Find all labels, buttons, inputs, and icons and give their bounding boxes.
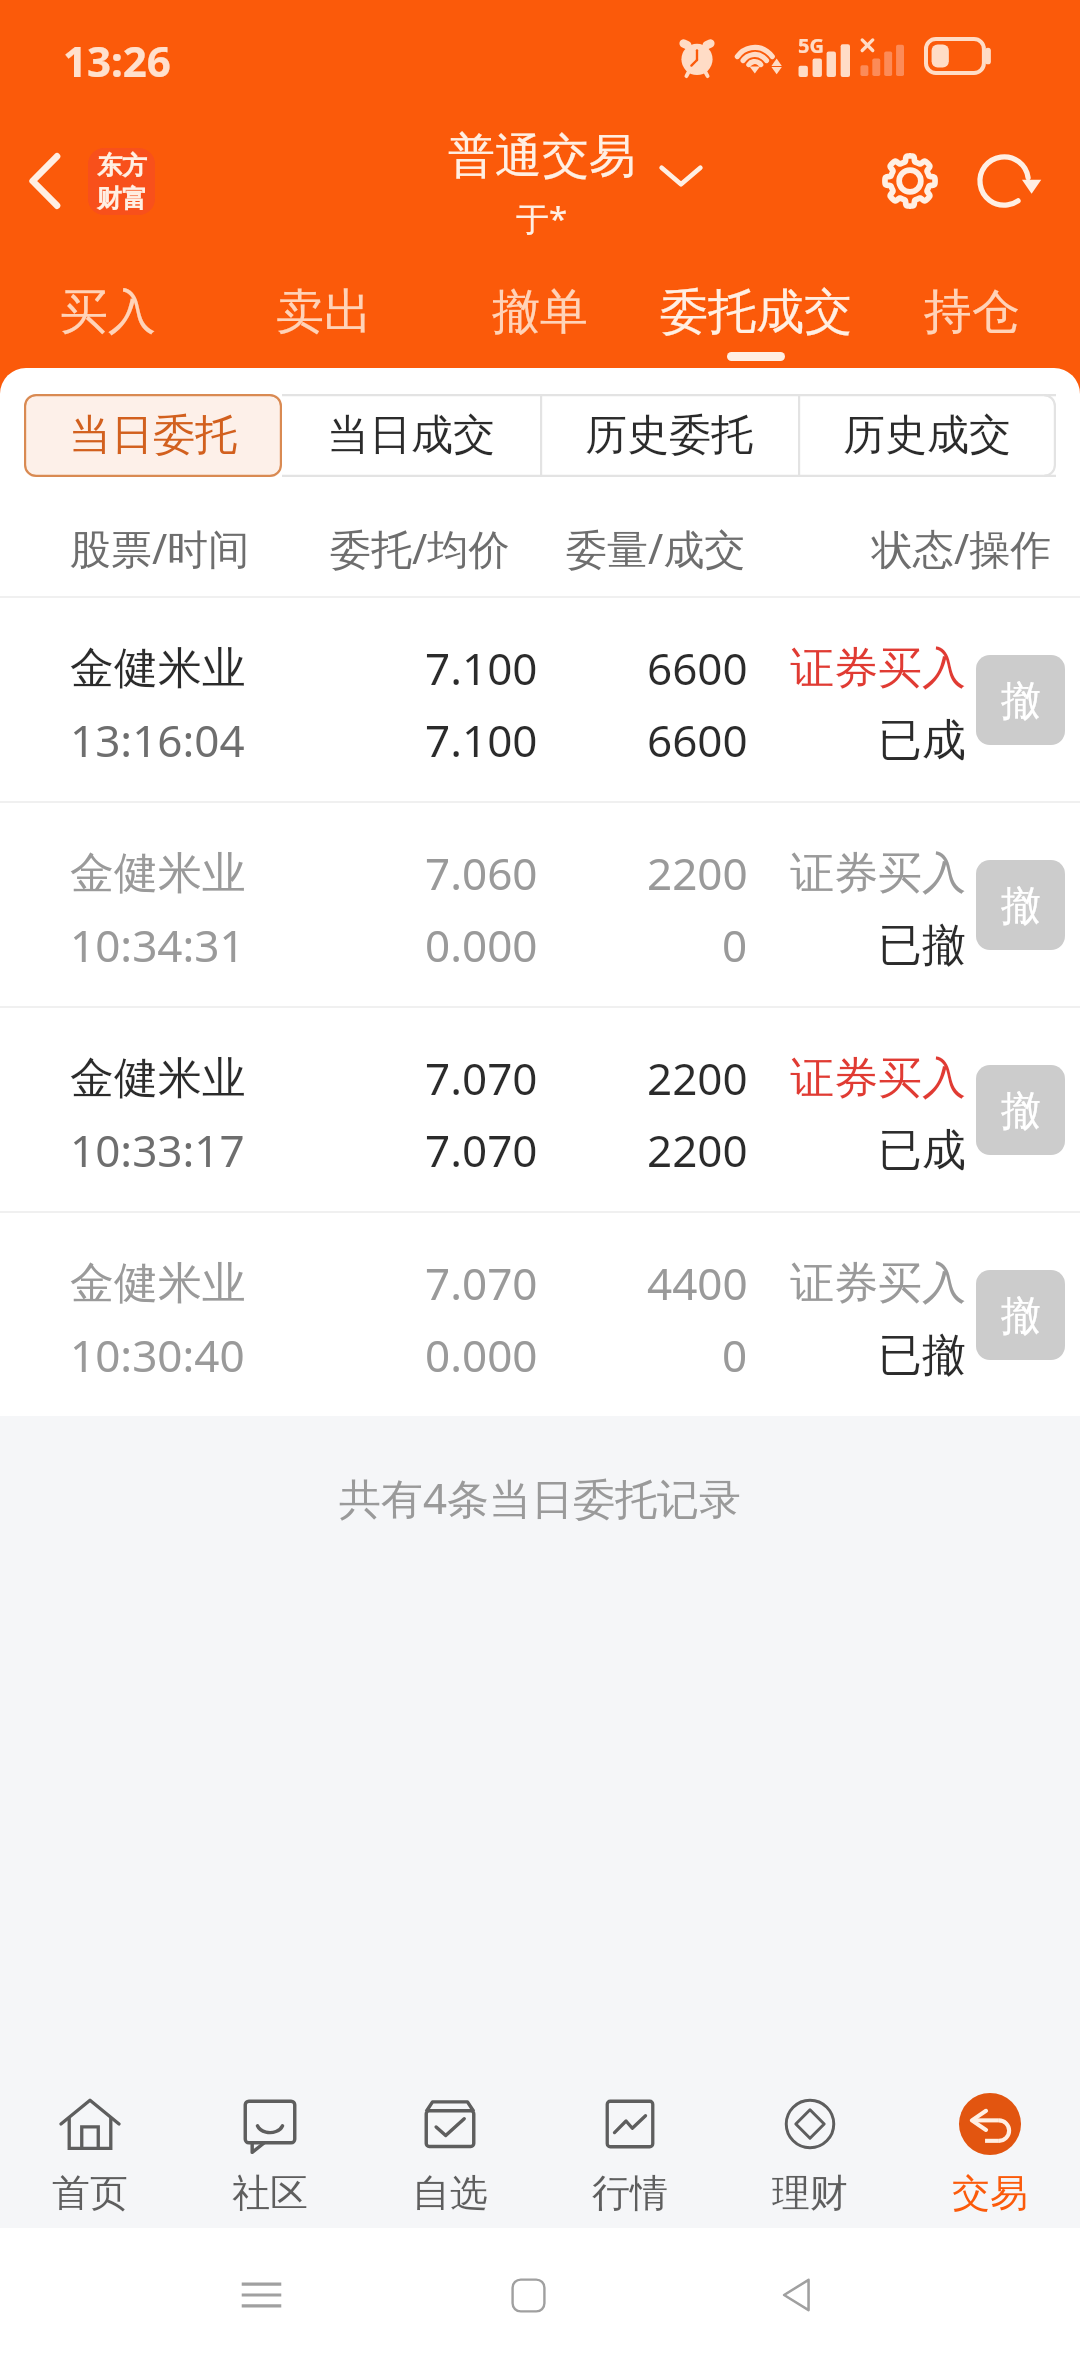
staticText: 5G — [798, 32, 824, 59]
staticText: 7.100 — [425, 638, 538, 698]
button[interactable]: 首页 — [0, 2072, 180, 2228]
button[interactable]: Refresh — [958, 133, 1054, 229]
staticText: 证券买入 — [790, 641, 966, 696]
staticText: 已撤 — [878, 918, 966, 973]
staticText: 已成 — [878, 1123, 966, 1178]
button[interactable]: 东方 — [88, 148, 155, 215]
staticText: 股票/时间 — [70, 520, 250, 576]
staticText: 10:34:31 — [70, 915, 245, 975]
button[interactable]: 撤 — [976, 1270, 1065, 1360]
staticText: 0 — [722, 915, 748, 975]
staticText: 撤单 — [492, 282, 588, 342]
staticText: 2200 — [647, 1120, 748, 1180]
button[interactable]: 当日成交 — [282, 394, 540, 477]
button[interactable]: Back — [0, 131, 88, 231]
staticText: 已撤 — [878, 1328, 966, 1383]
staticText: 金健米业 — [70, 846, 246, 901]
button[interactable]: 金健米业 — [0, 803, 1080, 1006]
staticText: 委托/均价 — [330, 520, 510, 576]
staticText: 自选 — [412, 2169, 488, 2217]
button[interactable]: 社区 — [180, 2072, 360, 2228]
button[interactable]: Recent apps — [216, 2250, 306, 2340]
staticText: 撤 — [1001, 1085, 1041, 1135]
staticText: 0 — [722, 1325, 748, 1385]
staticText: 7.070 — [425, 1253, 538, 1313]
staticText: 13:26 — [63, 32, 171, 89]
staticText: 当日委托 — [69, 409, 237, 462]
staticText: 持仓 — [924, 282, 1020, 342]
staticText: 证券买入 — [790, 1051, 966, 1106]
staticText: 7.100 — [425, 710, 538, 770]
staticText: 7.070 — [425, 1048, 538, 1108]
button[interactable]: 金健米业 — [0, 1213, 1080, 1416]
button[interactable]: 委托成交 — [648, 250, 864, 368]
staticText: 历史成交 — [843, 409, 1011, 462]
button[interactable]: 买入 — [0, 250, 216, 368]
staticText: 历史委托 — [585, 409, 753, 462]
staticText: 委托成交 — [660, 282, 852, 342]
staticText: 撤 — [1001, 880, 1041, 930]
staticText: 6600 — [647, 710, 748, 770]
staticText: 交易 — [952, 2169, 1028, 2217]
staticText: 理财 — [772, 2169, 848, 2217]
button[interactable]: 历史委托 — [540, 394, 798, 477]
button[interactable]: 持仓 — [864, 250, 1080, 368]
staticText: 10:33:17 — [70, 1120, 245, 1180]
staticText: 13:16:04 — [70, 710, 245, 770]
button[interactable]: Home — [483, 2250, 573, 2340]
staticText: 10:30:40 — [70, 1325, 245, 1385]
button[interactable]: 撤 — [976, 1065, 1065, 1155]
button[interactable]: 当日委托 — [24, 394, 282, 477]
button[interactable]: 行情 — [540, 2072, 720, 2228]
staticText: 4400 — [647, 1253, 748, 1313]
staticText: 卖出 — [276, 282, 372, 342]
staticText: 买入 — [60, 282, 156, 342]
button[interactable]: Back — [752, 2250, 842, 2340]
staticText: 金健米业 — [70, 1051, 246, 1106]
staticText: 6600 — [647, 638, 748, 698]
staticText: 首页 — [52, 2169, 128, 2217]
staticText: 撤 — [1001, 675, 1041, 725]
button[interactable]: 理财 — [720, 2072, 900, 2228]
staticText: 7.070 — [425, 1120, 538, 1180]
button[interactable]: 交易 — [900, 2072, 1080, 2228]
button[interactable]: 历史成交 — [798, 394, 1056, 477]
staticText: 0.000 — [425, 1325, 538, 1385]
staticText: 状态/操作 — [872, 520, 1052, 576]
staticText: 委量/成交 — [566, 520, 746, 576]
staticText: 金健米业 — [70, 1256, 246, 1311]
staticText: 2200 — [647, 1048, 748, 1108]
staticText: 证券买入 — [790, 1256, 966, 1311]
button[interactable]: 金健米业 — [0, 1008, 1080, 1211]
staticText: 证券买入 — [790, 846, 966, 901]
button[interactable]: 自选 — [360, 2072, 540, 2228]
staticText: 普通交易 — [448, 127, 636, 186]
staticText: 于* — [516, 196, 568, 241]
button[interactable]: 卖出 — [216, 250, 432, 368]
staticText: 当日成交 — [327, 409, 495, 462]
staticText: 2200 — [647, 843, 748, 903]
button[interactable]: 金健米业 — [0, 598, 1080, 801]
staticText: 0.000 — [425, 915, 538, 975]
staticText: 东方 — [97, 150, 147, 181]
staticText: 财富 — [97, 183, 147, 214]
staticText: 社区 — [232, 2169, 308, 2217]
staticText: 7.060 — [425, 843, 538, 903]
staticText: 行情 — [592, 2169, 668, 2217]
staticText: 金健米业 — [70, 641, 246, 696]
staticText: 撤 — [1001, 1290, 1041, 1340]
button[interactable]: Settings — [862, 133, 958, 229]
button[interactable]: 撤单 — [432, 250, 648, 368]
staticText: 共有4条当日委托记录 — [0, 1469, 1080, 1526]
button[interactable]: 撤 — [976, 655, 1065, 745]
button[interactable]: Switch account — [646, 141, 716, 211]
button[interactable]: 撤 — [976, 860, 1065, 950]
staticText: 已成 — [878, 713, 966, 768]
